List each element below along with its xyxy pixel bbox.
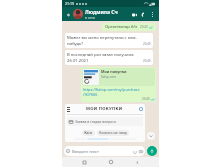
button[interactable]: Scroll to bottom [147,132,155,140]
button[interactable]: Началось час назад [97,130,129,136]
staticText: Ждём [84,131,93,135]
staticText: Людмила Сч [85,8,118,15]
staticText: В последний раз заказ получила 26.01.202… [67,52,142,63]
button[interactable]: Camera [138,149,143,154]
button[interactable]: МОИ ПОКУПКИ [65,104,145,142]
button[interactable]: Людмила Сч [85,8,130,20]
button[interactable]: В последний раз заказ получила 26.01.202… [65,50,153,65]
button[interactable]: Profile photo [73,9,83,19]
staticText: 20:46 [142,97,150,101]
staticText: 20:45 [143,59,151,63]
button[interactable]: Back [65,11,72,18]
button[interactable]: Может вы меня перепутали с кем-нибудь? [65,33,153,48]
staticText: 20:40 [140,25,148,29]
button[interactable]: Введите текст [64,146,145,156]
button[interactable]: Організатор б/з [102,23,156,31]
staticText: Заявка в стадии вопроса [75,119,116,124]
button[interactable]: Back [133,158,141,166]
button[interactable]: Ждём [82,130,95,136]
staticText: МОИ ПОКУПКИ [86,106,123,112]
button[interactable]: Attach [132,149,137,154]
button[interactable]: Мои покупки [81,67,156,102]
button[interactable]: Home [107,158,115,166]
button[interactable]: Recent apps [80,158,88,166]
staticText: Мои покупки [101,69,127,74]
staticText: Началось час назад [99,131,127,135]
staticText: Может вы меня перепутали с кем-нибудь? [67,35,142,46]
button[interactable]: More options [148,10,156,18]
staticText: fialop.com [101,75,116,79]
staticText: 21:19 [65,1,74,6]
staticText: 20:45 [143,42,151,46]
button[interactable]: Voice message [147,146,157,156]
staticText: Організатор б/з [105,24,138,30]
staticText: в сети [85,15,95,20]
button[interactable]: Video call [130,10,139,19]
button[interactable]: Call [139,10,148,19]
staticText: Введите текст [72,149,132,154]
staticText: https://fialop.com/my/purchase /907606 [83,87,140,97]
